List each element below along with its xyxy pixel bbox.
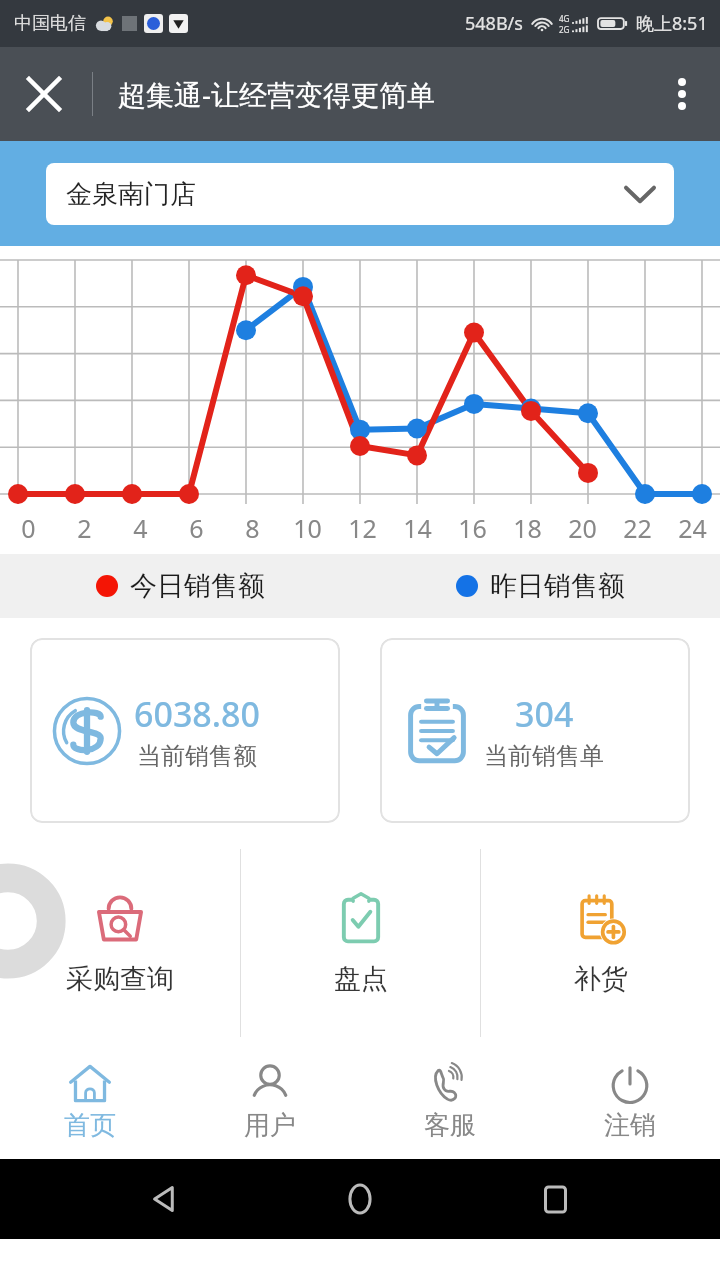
staticText: 304 <box>515 691 574 737</box>
staticText: 晚上8:51 <box>636 11 708 36</box>
button[interactable]: 补货 <box>481 843 720 1043</box>
staticText: 14 <box>403 511 432 545</box>
staticText: 10 <box>293 511 322 545</box>
staticText: 今日销售额 <box>130 569 265 603</box>
staticText: 22 <box>623 511 652 545</box>
button[interactable]: 首页 <box>0 1043 180 1159</box>
staticText: 548B/s <box>465 11 523 36</box>
button[interactable]: 304 <box>380 638 690 823</box>
staticText: 12 <box>348 511 377 545</box>
staticText: 8 <box>245 511 260 545</box>
staticText: 昨日销售额 <box>490 569 625 603</box>
button[interactable]: More options <box>654 66 710 122</box>
button[interactable]: Home <box>330 1169 390 1229</box>
staticText: 24 <box>678 511 707 545</box>
staticText: 2G <box>559 24 570 35</box>
staticText: 用户 <box>244 1109 296 1142</box>
staticText: 当前销售额 <box>137 741 257 771</box>
button[interactable]: 客服 <box>360 1043 540 1159</box>
button[interactable]: 6038.80 <box>30 638 340 823</box>
staticText: 6038.80 <box>134 691 260 737</box>
staticText: 4G <box>559 13 570 24</box>
button[interactable]: 采购查询 <box>0 843 240 1043</box>
button[interactable]: 用户 <box>180 1043 360 1159</box>
staticText: 客服 <box>424 1109 476 1142</box>
staticText: 2 <box>77 511 92 545</box>
staticText: 18 <box>513 511 542 545</box>
staticText: 金泉南门店 <box>66 178 626 211</box>
staticText: 0 <box>21 511 36 545</box>
staticText: 当前销售单 <box>484 741 604 771</box>
staticText: 注销 <box>604 1109 656 1142</box>
staticText: 4 <box>133 511 148 545</box>
staticText: 中国电信 <box>14 12 86 35</box>
button[interactable]: 金泉南门店 <box>46 163 674 225</box>
button[interactable]: Back <box>135 1169 195 1229</box>
staticText: 16 <box>458 511 487 545</box>
staticText: 补货 <box>574 962 628 996</box>
button[interactable]: Close <box>14 64 74 124</box>
button[interactable]: 盘点 <box>241 843 480 1043</box>
staticText: 6 <box>189 511 204 545</box>
staticText: 盘点 <box>334 962 388 996</box>
staticText: 首页 <box>64 1109 116 1142</box>
staticText: 20 <box>568 511 597 545</box>
staticText: 超集通-让经营变得更简单 <box>118 75 436 113</box>
button[interactable]: Recent apps <box>525 1169 585 1229</box>
staticText: 采购查询 <box>66 962 174 996</box>
button[interactable]: 注销 <box>540 1043 720 1159</box>
